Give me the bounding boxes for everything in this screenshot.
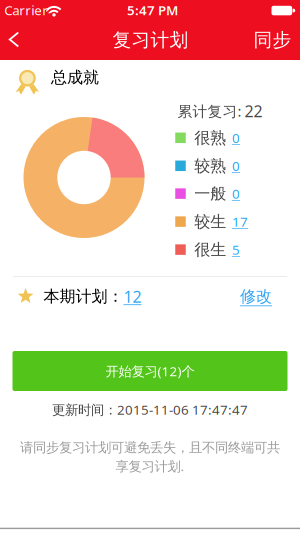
staticText: 22 [244, 100, 262, 122]
staticText: 5:47 PM [127, 1, 178, 19]
staticText: 享复习计划. [115, 457, 184, 475]
staticText: 较熟 [194, 156, 226, 176]
staticText: 开始复习(12)个 [105, 362, 194, 380]
button[interactable]: 开始复习(12)个 [12, 351, 287, 391]
button[interactable]: Back [10, 32, 18, 46]
staticText: 0 [232, 129, 240, 147]
staticText: 很生 [194, 240, 226, 259]
staticText: 复习计划 [112, 28, 188, 51]
button[interactable]: 0 [232, 185, 240, 202]
staticText: 本期计划： [43, 287, 123, 306]
staticText: Carrier [4, 1, 48, 19]
staticText: 一般 [194, 184, 226, 203]
button[interactable]: 12 [123, 286, 141, 307]
staticText: 0 [232, 157, 240, 175]
staticText: 较生 [194, 212, 226, 231]
staticText: 请同步复习计划可避免丢失，且不同终端可共 [20, 439, 280, 456]
button[interactable]: 同步 [253, 28, 291, 51]
button[interactable]: 0 [232, 157, 240, 175]
staticText: 修改 [240, 287, 272, 306]
staticText: 更新时间：2015-11-06 17:47:47 [52, 401, 248, 418]
button[interactable]: 修改 [240, 287, 272, 306]
button[interactable]: 0 [232, 129, 240, 147]
staticText: 12 [123, 286, 141, 307]
staticText: 同步 [253, 28, 291, 51]
staticText: 0 [232, 185, 240, 202]
staticText: 总成就 [51, 68, 99, 87]
staticText: 累计复习: [177, 101, 241, 121]
staticText: 很熟 [194, 128, 226, 148]
button[interactable]: 17 [232, 213, 248, 230]
button[interactable]: 5 [232, 241, 240, 258]
staticText: 5 [232, 241, 240, 258]
staticText: 17 [232, 213, 248, 230]
